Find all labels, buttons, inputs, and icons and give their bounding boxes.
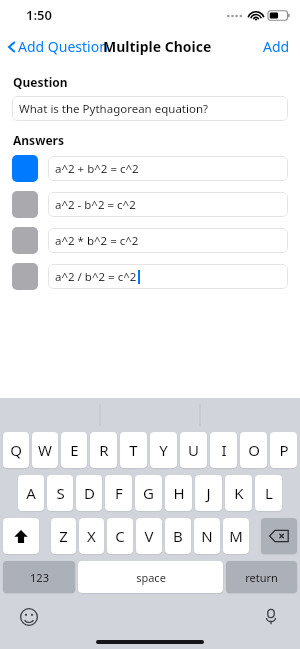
staticText: M xyxy=(229,526,243,546)
staticText: a^2 + b^2 = c^2 xyxy=(55,161,139,177)
staticText: O xyxy=(248,440,260,460)
staticText: Add Question xyxy=(18,37,108,56)
button[interactable]: Add Question xyxy=(0,34,114,59)
button[interactable]: return xyxy=(226,561,297,593)
staticText: P xyxy=(279,440,289,460)
button[interactable]: S xyxy=(47,475,73,511)
button[interactable]: Z xyxy=(51,518,76,554)
staticText: What is the Pythagorean equation? xyxy=(19,101,209,117)
staticText: F xyxy=(115,483,123,503)
button[interactable]: 123 xyxy=(3,561,75,593)
button[interactable]: B xyxy=(165,518,191,554)
button[interactable]: Mark as correct answer xyxy=(12,263,38,290)
button[interactable]: V xyxy=(136,518,162,554)
button[interactable]: P xyxy=(270,432,297,468)
staticText: a^2 - b^2 = c^2 xyxy=(55,197,136,213)
staticText: E xyxy=(70,440,79,460)
staticText: T xyxy=(129,440,138,460)
staticText: L xyxy=(265,483,273,503)
staticText: Add xyxy=(263,37,290,56)
staticText: B xyxy=(173,526,183,546)
button[interactable]: a^2 * b^2 = c^2 xyxy=(48,228,288,253)
button[interactable]: D xyxy=(76,475,102,511)
button[interactable]: K xyxy=(225,475,252,511)
staticText: Answers xyxy=(13,132,64,148)
button[interactable]: Mark as correct answer xyxy=(12,191,38,218)
button[interactable]: a^2 + b^2 = c^2 xyxy=(48,156,288,181)
button[interactable]: E xyxy=(61,432,87,468)
staticText: Question xyxy=(13,74,68,90)
staticText: S xyxy=(56,483,65,503)
staticText: return xyxy=(245,570,278,585)
staticText: 1:50 xyxy=(26,6,52,24)
button[interactable]: R xyxy=(90,432,117,468)
button[interactable]: a^2 / b^2 = c^2 xyxy=(48,264,288,289)
staticText: Multiple Choice xyxy=(103,37,212,56)
staticText: V xyxy=(144,526,154,546)
button[interactable]: a^2 - b^2 = c^2 xyxy=(48,192,288,217)
button[interactable]: H xyxy=(165,475,192,511)
button[interactable]: Dictation xyxy=(258,604,284,630)
staticText: A xyxy=(26,483,36,503)
button[interactable]: L xyxy=(255,475,282,511)
staticText: H xyxy=(173,483,185,503)
button[interactable]: J xyxy=(195,475,222,511)
button[interactable]: Add xyxy=(253,33,300,60)
button[interactable]: space xyxy=(78,561,223,593)
staticText: space xyxy=(136,570,166,585)
staticText: X xyxy=(87,526,96,546)
button[interactable]: Correct answer selected xyxy=(12,155,38,182)
button[interactable]: C xyxy=(107,518,133,554)
button[interactable]: What is the Pythagorean equation? xyxy=(12,96,288,121)
staticText: 123 xyxy=(30,570,49,585)
staticText: R xyxy=(99,440,109,460)
button[interactable]: Q xyxy=(3,432,29,468)
button[interactable]: U xyxy=(180,432,207,468)
button[interactable]: Mark as correct answer xyxy=(12,227,38,254)
button[interactable]: W xyxy=(32,432,58,468)
staticText: a^2 * b^2 = c^2 xyxy=(55,233,139,249)
button[interactable]: A xyxy=(18,475,44,511)
button[interactable]: T xyxy=(120,432,147,468)
staticText: U xyxy=(188,440,199,460)
button[interactable]: N xyxy=(194,518,220,554)
button[interactable]: X xyxy=(79,518,104,554)
button[interactable]: I xyxy=(210,432,237,468)
staticText: K xyxy=(234,483,244,503)
button[interactable]: Emoji xyxy=(16,604,42,630)
staticText: I xyxy=(221,440,227,460)
staticText: a^2 / b^2 = c^2 xyxy=(55,269,137,285)
button[interactable]: Backspace xyxy=(261,518,297,554)
button[interactable]: F xyxy=(105,475,132,511)
staticText: C xyxy=(115,526,125,546)
staticText: D xyxy=(84,483,95,503)
staticText: Y xyxy=(159,440,168,460)
staticText: G xyxy=(143,483,154,503)
staticText: Z xyxy=(59,526,68,546)
button[interactable]: O xyxy=(240,432,267,468)
staticText: N xyxy=(201,526,213,546)
button[interactable]: M xyxy=(223,518,249,554)
staticText: W xyxy=(38,440,52,460)
staticText: J xyxy=(206,483,211,503)
button[interactable]: Shift xyxy=(3,518,39,554)
button[interactable]: Y xyxy=(150,432,177,468)
button[interactable]: G xyxy=(135,475,162,511)
staticText: Q xyxy=(10,440,22,460)
